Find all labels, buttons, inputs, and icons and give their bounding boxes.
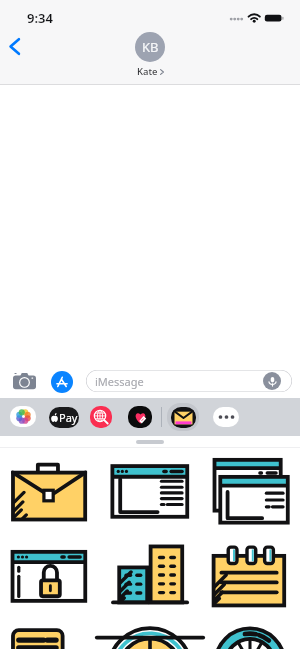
button[interactable]: KB <box>120 32 180 78</box>
button[interactable]: Sticker 7 <box>0 620 100 649</box>
button[interactable]: Sticker 4 <box>0 534 100 620</box>
button[interactable]: Image search <box>90 406 112 428</box>
button[interactable]: Camera <box>10 366 38 396</box>
staticText: 9:34 <box>27 9 53 27</box>
button[interactable]: App Store <box>51 371 73 393</box>
button[interactable]: Apple Pay <box>49 407 79 428</box>
button[interactable]: More apps <box>213 407 239 427</box>
button[interactable]: Photos <box>10 406 36 427</box>
button[interactable]: Business stickers <box>167 403 199 431</box>
button[interactable]: Back <box>2 31 26 62</box>
button[interactable]: Sticker 5 <box>100 534 200 620</box>
staticText: KB <box>142 38 159 56</box>
button[interactable]: Sticker 2 <box>100 449 200 535</box>
button[interactable]: Sticker 1 <box>0 449 100 535</box>
staticText: Pay <box>59 410 78 425</box>
button[interactable]: Sticker 8 <box>100 620 200 649</box>
button[interactable]: iMessage <box>86 370 292 392</box>
button[interactable]: Digital Touch <box>128 406 152 428</box>
staticText: iMessage <box>95 374 144 389</box>
button[interactable]: Sticker 6 <box>200 534 300 620</box>
button[interactable]: Record audio message <box>263 372 281 390</box>
staticText: Kate <box>137 65 158 78</box>
button[interactable]: Sticker 9 <box>200 620 300 649</box>
button[interactable]: Sticker 3 <box>200 449 300 535</box>
